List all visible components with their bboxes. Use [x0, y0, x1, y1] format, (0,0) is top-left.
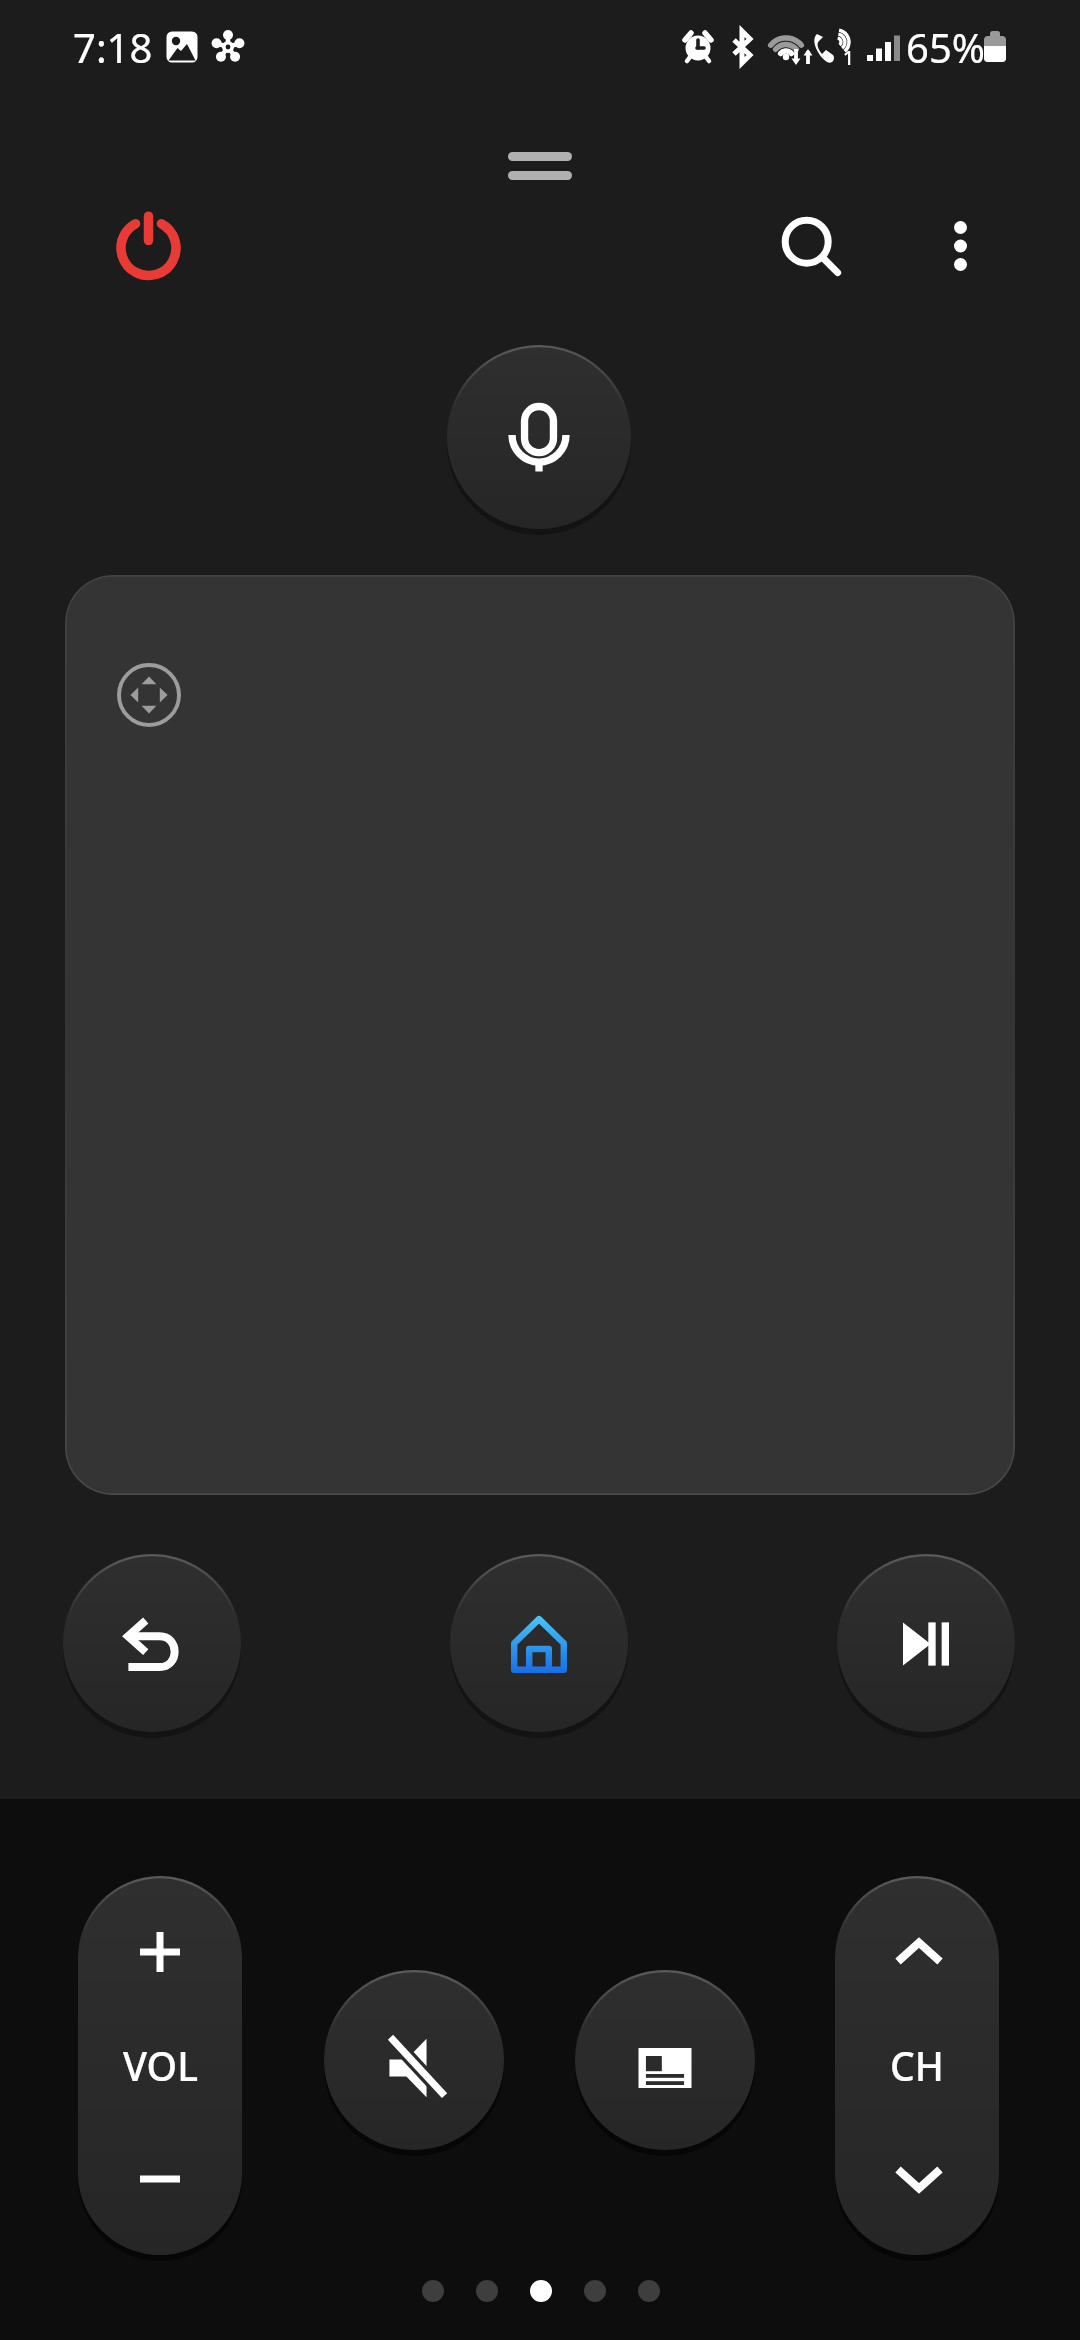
button[interactable]: Page 1: [406, 2276, 460, 2306]
button[interactable]: Subtitles: [555, 1950, 775, 2170]
button[interactable]: Back: [41, 1532, 263, 1754]
button[interactable]: Mute: [304, 1950, 524, 2170]
button[interactable]: Search: [761, 196, 857, 292]
button[interactable]: Home: [428, 1532, 650, 1754]
button[interactable]: Page 4: [568, 2276, 622, 2306]
staticText: 1: [843, 45, 854, 71]
staticText: 65%: [906, 20, 985, 74]
button[interactable]: Channel down: [835, 2103, 999, 2255]
button[interactable]: Volume down: [78, 2103, 242, 2255]
button[interactable]: Page 3: [514, 2276, 568, 2306]
button[interactable]: Power: [101, 200, 197, 296]
staticText: CH: [890, 2039, 944, 2092]
button[interactable]: Channel up: [835, 1876, 999, 2028]
staticText: 7:18: [73, 20, 153, 74]
button[interactable]: Volume up: [78, 1876, 242, 2028]
button[interactable]: Page 5: [622, 2276, 676, 2306]
button[interactable]: Page 2: [460, 2276, 514, 2306]
staticText: VOL: [123, 2039, 198, 2092]
button[interactable]: Voice search: [431, 333, 647, 549]
button[interactable]: More options: [912, 196, 1008, 292]
button[interactable]: Touchpad: [65, 575, 1015, 1495]
button[interactable]: Play or pause: [815, 1532, 1037, 1754]
